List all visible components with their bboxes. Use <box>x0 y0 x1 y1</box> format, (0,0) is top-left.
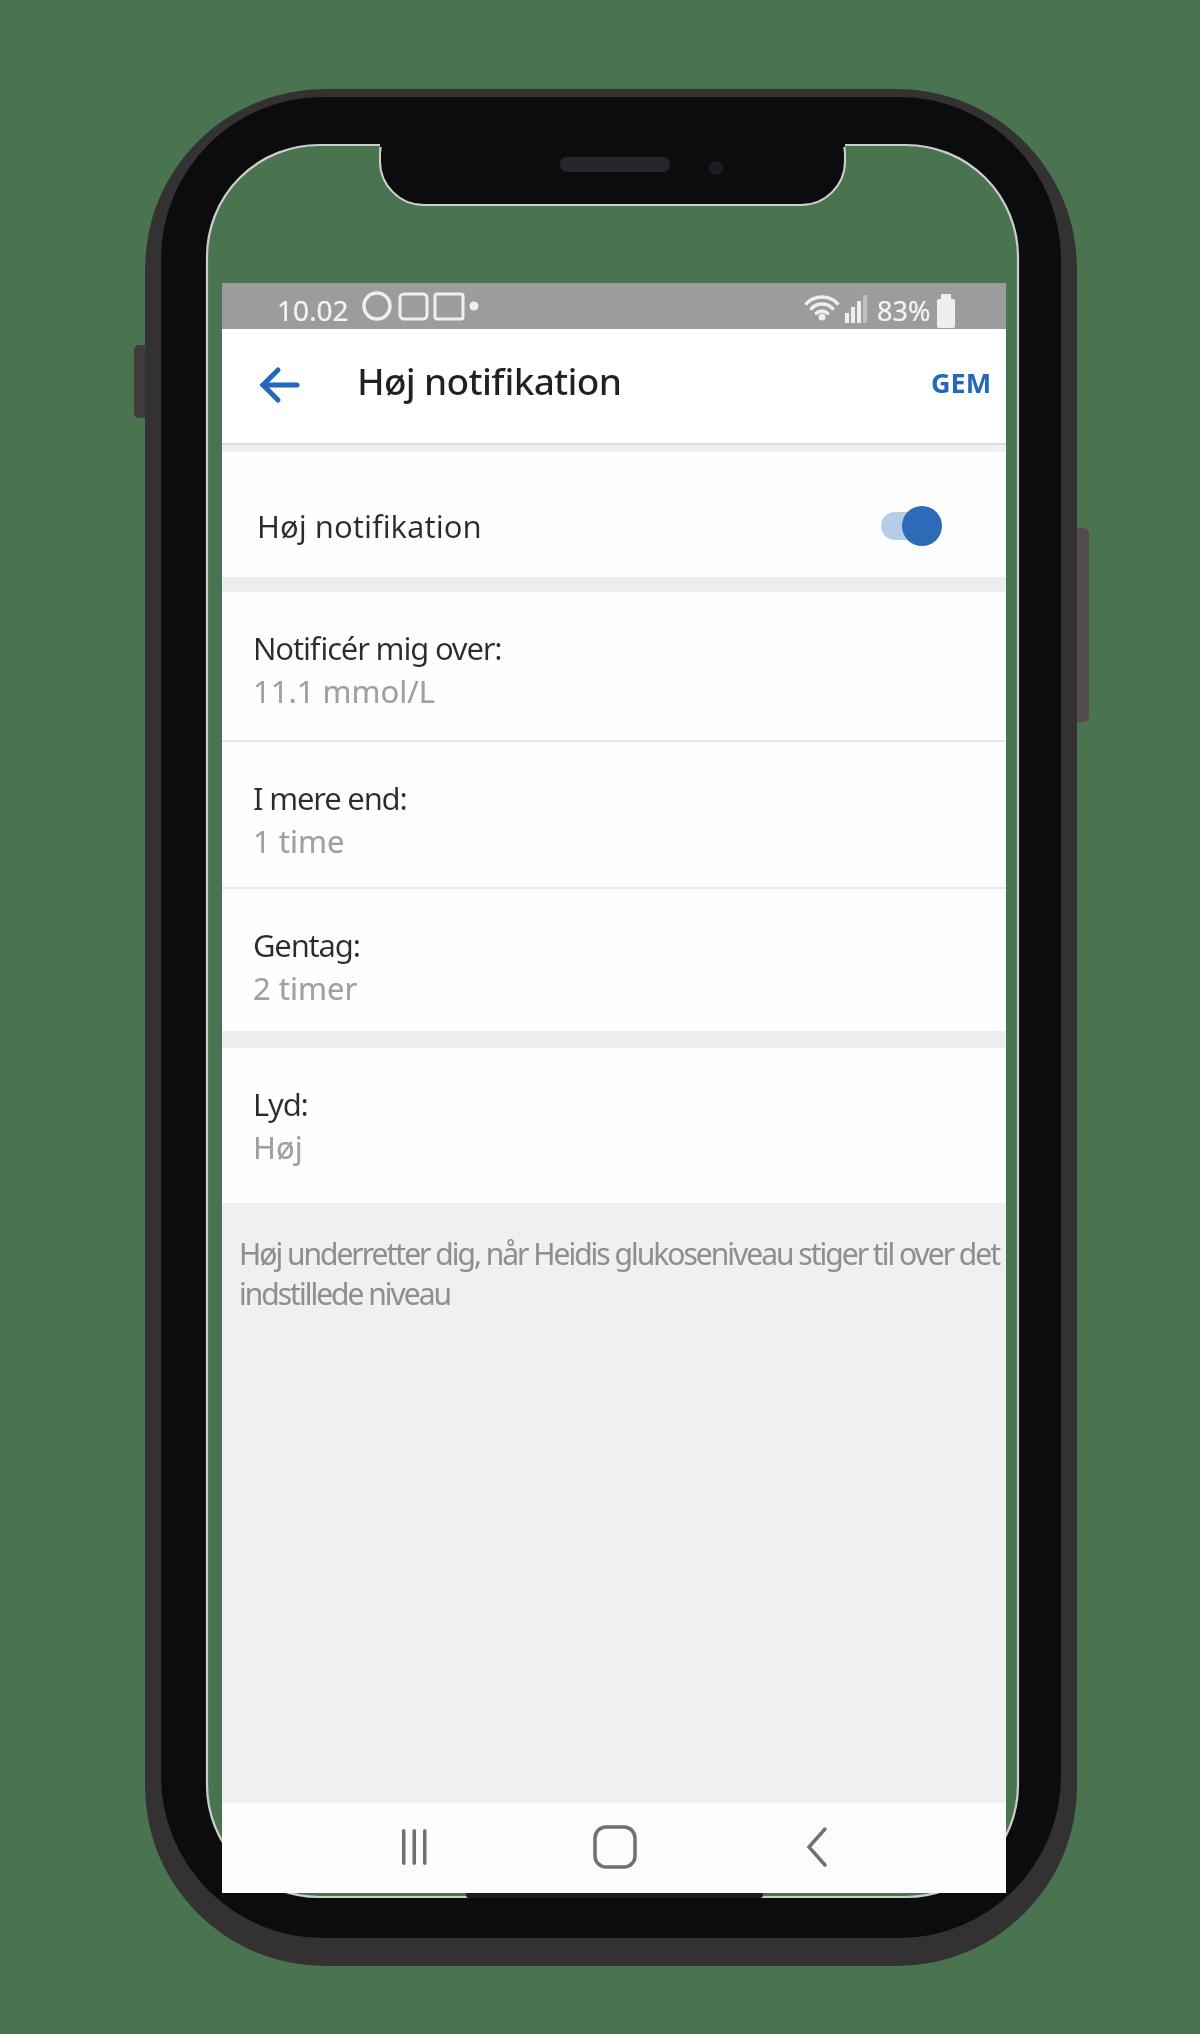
staticText: 2 timer <box>253 967 358 1009</box>
button[interactable]: Høj notifikation <box>222 452 1006 577</box>
staticText: 11.1 mmol/L <box>253 670 436 712</box>
button[interactable]: GEM <box>917 354 1007 414</box>
button[interactable] <box>565 1813 665 1883</box>
staticText: Høj notifikation <box>257 505 482 547</box>
staticText: 10.02 <box>277 291 349 329</box>
staticText: Lyd: <box>253 1083 308 1125</box>
staticText: Høj underretter dig, når Heidis glukosen… <box>239 1233 1000 1314</box>
button[interactable]: I mere end: <box>222 742 1006 887</box>
staticText: Gentag: <box>253 924 360 966</box>
button[interactable] <box>252 357 308 413</box>
staticText: GEM <box>931 364 992 401</box>
staticText: I mere end: <box>253 777 407 819</box>
staticText: Høj notifikation <box>357 355 622 405</box>
button[interactable] <box>775 1813 875 1883</box>
staticText: 1 time <box>253 820 345 862</box>
button[interactable]: Lyd: <box>222 1048 1006 1203</box>
staticText: Notificér mig over: <box>253 627 502 669</box>
button[interactable]: Notificér mig over: <box>222 592 1006 740</box>
button[interactable]: Gentag: <box>222 889 1006 1031</box>
staticText: 83% <box>877 292 931 329</box>
staticText: Høj <box>253 1126 303 1168</box>
button[interactable] <box>372 1813 472 1883</box>
